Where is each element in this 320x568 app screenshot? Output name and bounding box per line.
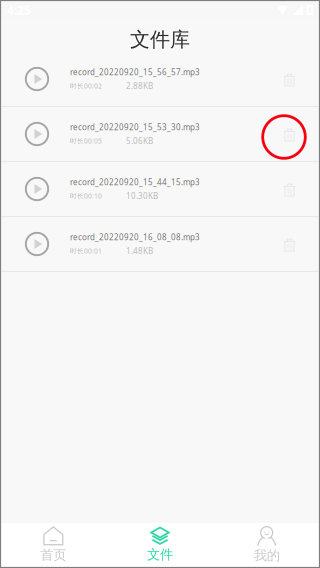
staticText: record_20220920_15_44_15.mp3 — [70, 177, 200, 187]
staticText: 10.30KB — [126, 190, 158, 201]
button[interactable]: 首页 — [0, 523, 107, 568]
staticText: 2.88KB — [126, 80, 153, 91]
button[interactable]: 文件 — [107, 523, 213, 568]
staticText: 文件库 — [130, 27, 190, 52]
staticText: 文件 — [147, 546, 173, 563]
staticText: 时长00:02 — [70, 81, 102, 90]
button[interactable]: Play — [0, 217, 70, 271]
button[interactable]: 我的 — [213, 523, 320, 568]
button[interactable]: Delete — [260, 52, 320, 106]
staticText: 5.06KB — [126, 135, 153, 146]
staticText: record_20220920_15_56_57.mp3 — [70, 67, 200, 77]
button[interactable]: Delete — [260, 217, 320, 271]
staticText: 1.48KB — [126, 245, 153, 256]
staticText: 时长00:05 — [70, 136, 102, 145]
button[interactable]: Delete — [260, 107, 320, 161]
staticText: 时长00:10 — [70, 191, 102, 200]
staticText: 时长00:01 — [70, 246, 102, 255]
button[interactable]: Delete — [260, 162, 320, 216]
button[interactable]: Play — [0, 52, 70, 106]
staticText: 我的 — [254, 547, 280, 564]
staticText: 首页 — [40, 547, 66, 563]
staticText: record_20220920_15_53_30.mp3 — [70, 122, 200, 132]
staticText: record_20220920_16_08_08.mp3 — [70, 232, 200, 242]
button[interactable]: Play — [0, 162, 70, 216]
button[interactable]: Play — [0, 107, 70, 161]
